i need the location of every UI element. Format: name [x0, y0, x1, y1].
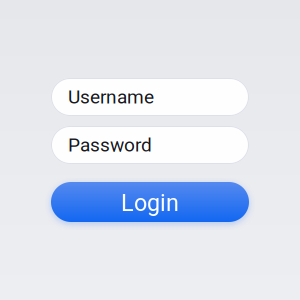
staticText: Username — [68, 86, 154, 108]
staticText: Password — [68, 134, 152, 156]
button[interactable]: Username — [51, 78, 249, 116]
button[interactable]: Password — [51, 126, 249, 164]
button[interactable]: Login — [51, 182, 249, 222]
staticText: Login — [121, 189, 179, 217]
